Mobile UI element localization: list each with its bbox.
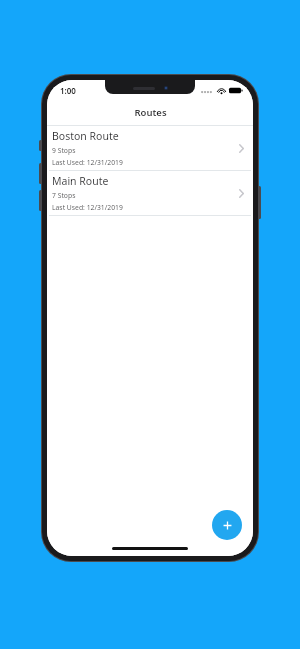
button[interactable]: Main Route [49, 171, 251, 216]
staticText: Boston Route [52, 129, 119, 143]
staticText: 9 Stops [52, 146, 76, 155]
staticText: Last Used: 12/31/2019 [52, 203, 123, 212]
button[interactable]: Boston Route [49, 126, 251, 171]
staticText: 1:00 [60, 85, 76, 96]
staticText: Main Route [52, 174, 109, 188]
button[interactable]: Add route [212, 510, 242, 540]
staticText: Routes [134, 106, 167, 119]
staticText: Last Used: 12/31/2019 [52, 158, 123, 167]
staticText: 7 Stops [52, 191, 76, 200]
